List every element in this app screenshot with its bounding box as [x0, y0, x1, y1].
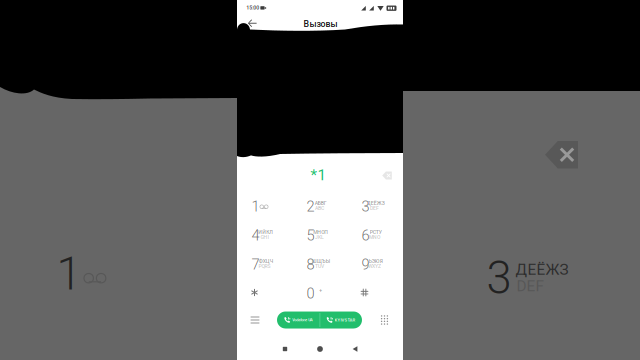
staticText: 5: [306, 227, 314, 244]
staticText: TUV: [315, 263, 324, 269]
button[interactable]: Back: [342, 340, 368, 358]
staticText: Vodafone UA: [292, 318, 312, 322]
button[interactable]: 6: [340, 220, 390, 249]
button[interactable]: Home: [307, 340, 333, 358]
staticText: ABC: [315, 205, 324, 211]
staticText: ЬЭЮЯ: [369, 258, 383, 264]
button[interactable]: KYIVSTAR: [320, 311, 362, 328]
staticText: *1: [310, 166, 326, 184]
button[interactable]: 2: [285, 191, 335, 220]
staticText: 2: [306, 198, 314, 215]
staticText: ШЩЪЫ: [312, 258, 330, 264]
staticText: ДЕЁЖЗ: [515, 260, 568, 278]
button[interactable]: 8: [285, 249, 335, 278]
button[interactable]: Delete: [376, 166, 398, 184]
staticText: DEF: [516, 277, 543, 295]
staticText: МНОП: [313, 229, 328, 235]
staticText: ФХЦЧ: [259, 258, 273, 264]
button[interactable]: 1: [230, 191, 280, 220]
staticText: GHI: [260, 234, 268, 240]
staticText: 3: [361, 198, 369, 215]
button[interactable]: Recent apps: [272, 340, 298, 358]
staticText: 0: [306, 285, 314, 302]
button[interactable]: 7: [230, 249, 280, 278]
button[interactable]: 3: [340, 191, 390, 220]
staticText: 1: [56, 247, 81, 300]
button[interactable]: Pound: [340, 278, 390, 307]
button[interactable]: Back: [241, 12, 263, 34]
button[interactable]: Vodafone UA: [277, 311, 319, 328]
staticText: ИЙКЛ: [258, 229, 273, 235]
staticText: 9: [361, 256, 369, 273]
button[interactable]: 0: [285, 278, 335, 307]
staticText: 15:00: [246, 5, 259, 11]
button[interactable]: Keypad: [374, 310, 394, 330]
staticText: АБВГ: [315, 200, 327, 206]
staticText: WXYZ: [368, 263, 381, 269]
staticText: DEF: [370, 205, 379, 211]
staticText: 8: [306, 256, 314, 273]
staticText: ДЕЁЖЗ: [367, 200, 385, 206]
button[interactable]: Menu: [244, 310, 266, 330]
staticText: JKL: [315, 234, 324, 240]
staticText: 6: [361, 227, 369, 244]
button[interactable]: 5: [285, 220, 335, 249]
button[interactable]: 4: [230, 220, 280, 249]
staticText: PQRS: [258, 263, 270, 269]
staticText: +: [319, 287, 322, 293]
button[interactable]: 9: [340, 249, 390, 278]
staticText: 3: [486, 251, 511, 304]
button[interactable]: Star: [230, 278, 280, 307]
staticText: KYIVSTAR: [335, 317, 356, 322]
staticText: 7: [251, 256, 259, 273]
staticText: 4: [251, 227, 259, 244]
staticText: MNO: [369, 234, 380, 240]
staticText: 1: [251, 198, 259, 215]
staticText: Вызовы: [303, 19, 337, 29]
staticText: РСТУ: [370, 229, 382, 235]
